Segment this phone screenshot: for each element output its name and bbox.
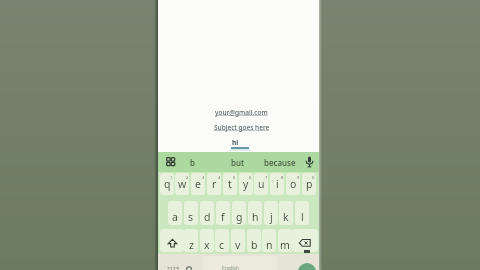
button[interactable]: v (231, 229, 245, 252)
button[interactable]: j (264, 201, 278, 225)
staticText: 1 (170, 175, 173, 180)
button[interactable] (302, 173, 316, 195)
staticText: q (164, 177, 171, 191)
button[interactable]: z (184, 229, 198, 252)
button[interactable]: b (247, 229, 261, 252)
staticText: z (189, 238, 194, 252)
staticText: c (219, 238, 225, 252)
staticText: d (204, 210, 211, 224)
button[interactable] (254, 173, 268, 195)
staticText: 4 (218, 175, 221, 180)
staticText: p (306, 177, 313, 191)
staticText: 8 (281, 175, 284, 180)
staticText: w (178, 177, 187, 191)
staticText: 7 (265, 175, 268, 180)
button[interactable] (298, 263, 316, 270)
button[interactable]: b (182, 152, 202, 172)
button[interactable] (239, 173, 253, 195)
staticText: s (188, 210, 194, 224)
button[interactable] (207, 173, 221, 195)
button[interactable]: f (216, 201, 230, 225)
staticText: 9 (297, 175, 300, 180)
button[interactable] (286, 173, 300, 195)
button[interactable] (223, 173, 237, 195)
button[interactable]: m (278, 229, 292, 252)
staticText: r (212, 177, 217, 191)
staticText: v (235, 238, 241, 252)
staticText: b (190, 157, 195, 168)
button[interactable]: g (232, 201, 246, 225)
staticText: 2 (186, 175, 189, 180)
staticText: i (276, 177, 279, 191)
staticText: h (252, 210, 259, 224)
staticText: a (172, 210, 178, 224)
button[interactable]: because (262, 152, 298, 172)
staticText: but (231, 157, 245, 168)
button[interactable] (203, 256, 277, 270)
button[interactable]: Subject goes here (214, 123, 270, 132)
button[interactable] (160, 173, 174, 195)
button[interactable]: x (200, 229, 214, 252)
button[interactable] (175, 173, 189, 195)
staticText: u (258, 177, 265, 191)
staticText: hi (232, 138, 239, 147)
button[interactable]: n (262, 229, 276, 252)
button[interactable] (305, 156, 314, 168)
button[interactable]: d (200, 201, 214, 225)
staticText: y (243, 177, 249, 191)
staticText: ?123 (167, 265, 179, 270)
button[interactable] (166, 157, 175, 166)
button[interactable]: c (215, 229, 229, 252)
staticText: 0 (312, 175, 315, 180)
staticText: 6 (249, 175, 252, 180)
button[interactable] (191, 173, 205, 195)
staticText: English (222, 265, 240, 270)
staticText: e (195, 177, 201, 191)
staticText: x (204, 238, 210, 252)
staticText: g (236, 210, 243, 224)
staticText: 5 (233, 175, 236, 180)
button[interactable]: a (168, 201, 182, 225)
staticText: k (283, 210, 289, 224)
staticText: f (221, 210, 225, 224)
staticText: because (264, 157, 296, 168)
staticText: o (290, 177, 297, 191)
staticText: t (228, 177, 232, 191)
staticText: b (251, 238, 258, 252)
button[interactable]: h (248, 201, 262, 225)
button[interactable]: ?123 (162, 265, 184, 270)
staticText: 3 (202, 175, 205, 180)
button[interactable] (186, 266, 192, 270)
staticText: m (280, 238, 290, 252)
button[interactable]: s (184, 201, 198, 225)
button[interactable]: your@gmail.com (215, 108, 268, 117)
staticText: n (266, 238, 273, 252)
button[interactable]: k (279, 201, 293, 225)
button[interactable]: but (228, 152, 248, 172)
staticText: l (301, 210, 304, 224)
button[interactable] (160, 229, 184, 252)
button[interactable]: l (295, 201, 309, 225)
staticText: j (270, 210, 273, 224)
button[interactable] (292, 229, 318, 252)
button[interactable] (270, 173, 284, 195)
